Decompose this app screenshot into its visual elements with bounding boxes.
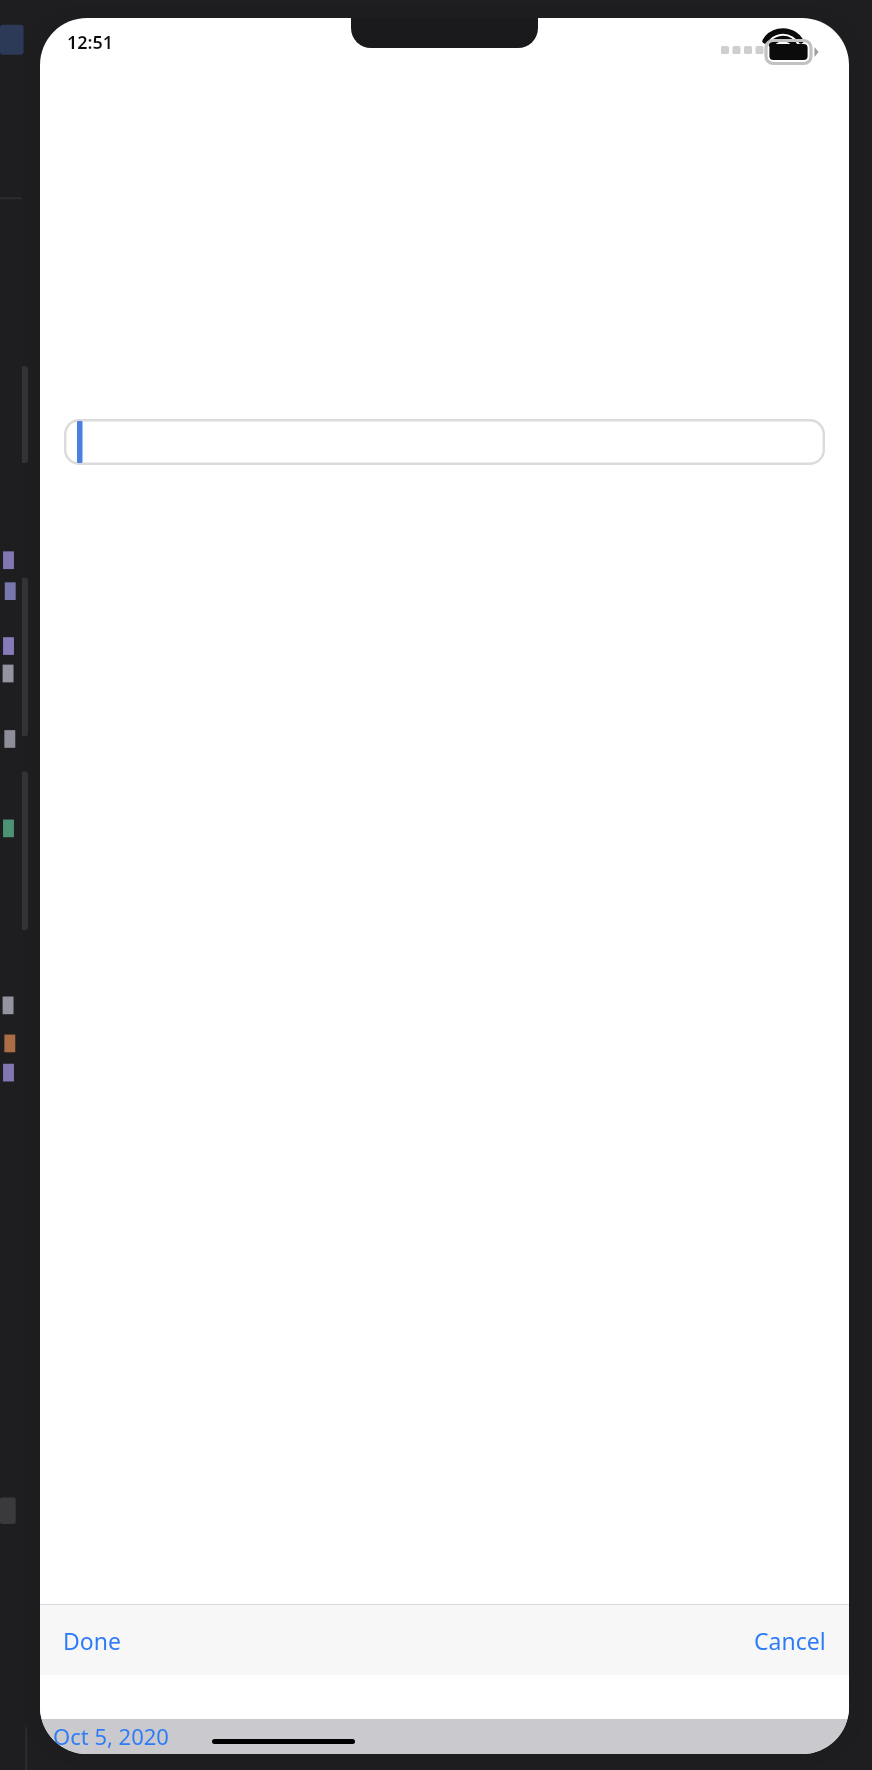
- button[interactable]: Oct 5, 2020: [45, 1718, 177, 1753]
- button[interactable]: Done: [49, 1616, 135, 1665]
- staticText: Cancel: [754, 1625, 826, 1656]
- other: Home indicator: [212, 1739, 355, 1744]
- staticText: Oct 5, 2020: [53, 1721, 169, 1750]
- staticText: 12:51: [67, 30, 114, 55]
- button[interactable]: Cancel: [740, 1616, 840, 1665]
- staticText: Done: [63, 1625, 121, 1656]
- button[interactable]: Text field: [64, 419, 825, 465]
